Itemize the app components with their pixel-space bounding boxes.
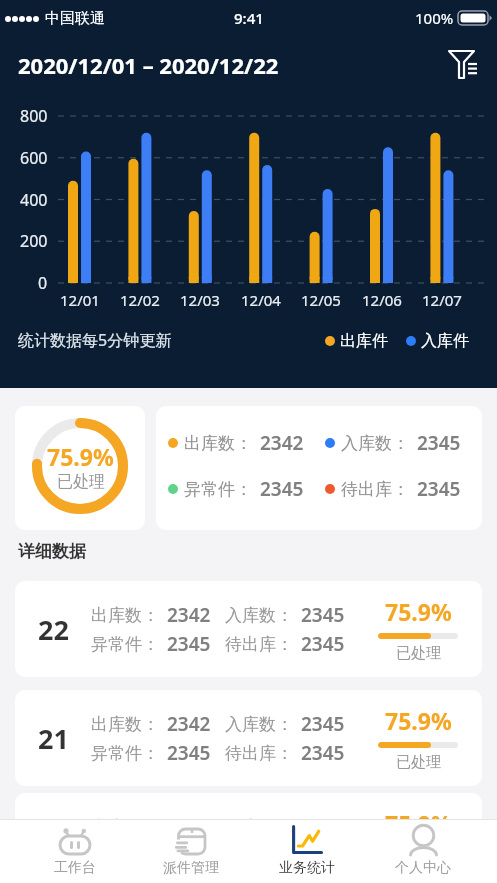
staticText: 统计数据每5分钟更新	[18, 329, 172, 351]
staticText: 2345	[167, 631, 211, 657]
button[interactable]: 业务统计	[249, 820, 365, 883]
staticText: 0	[38, 272, 48, 294]
staticText: 异常件：	[91, 634, 159, 655]
staticText: 22	[38, 611, 69, 648]
staticText: 工作台	[54, 859, 96, 877]
staticText: 100%	[415, 8, 454, 28]
staticText: 待出库：	[225, 634, 293, 655]
staticText: 派件管理	[163, 859, 219, 877]
staticText: 600	[20, 147, 48, 169]
staticText: 入库数：	[225, 817, 293, 819]
staticText: 2345	[417, 476, 461, 502]
staticText: 入库数：	[341, 433, 409, 454]
staticText: 2020/12/01 – 2020/12/22	[18, 50, 279, 80]
staticText: 详细数据	[18, 541, 86, 562]
staticText: 2345	[301, 711, 345, 737]
staticText: 2345	[167, 740, 211, 766]
staticText: 出库数：	[91, 605, 159, 626]
staticText: 2342	[167, 711, 211, 737]
staticText: 2345	[301, 740, 345, 766]
staticText: 12/05	[301, 290, 341, 310]
staticText: 2342	[167, 602, 211, 628]
button[interactable]: 75.9%	[15, 406, 145, 530]
staticText: 12/07	[422, 290, 462, 310]
staticText: 出库数：	[91, 714, 159, 735]
staticText: 异常件：	[184, 479, 252, 500]
staticText: 800	[20, 105, 48, 127]
staticText: 出库件	[340, 331, 388, 351]
staticText: 个人中心	[395, 859, 451, 877]
staticText: 75.9%	[385, 808, 452, 819]
staticText: 入库数：	[225, 605, 293, 626]
staticText: 12/03	[180, 290, 220, 310]
staticText: 21	[38, 720, 69, 757]
staticText: 业务统计	[279, 859, 335, 877]
button[interactable]: 个人中心	[365, 820, 481, 883]
staticText: 2345	[260, 476, 304, 502]
staticText: 已处理	[396, 644, 441, 663]
staticText: 待出库：	[341, 479, 409, 500]
staticText: 200	[20, 230, 48, 252]
staticText: 12/01	[60, 290, 100, 310]
button[interactable]	[440, 44, 484, 88]
button[interactable]: 22	[15, 581, 482, 677]
staticText: 12/02	[120, 290, 160, 310]
staticText: 入库件	[421, 331, 469, 351]
button[interactable]: 20	[15, 793, 482, 819]
staticText: 2345	[301, 602, 345, 628]
staticText: 75.9%	[47, 441, 114, 472]
staticText: 已处理	[57, 472, 105, 492]
button[interactable]: 出库数：	[156, 406, 482, 530]
staticText: 2345	[301, 631, 345, 657]
staticText: 入库数：	[225, 714, 293, 735]
staticText: 出库数：	[184, 433, 252, 454]
staticText: 400	[20, 189, 48, 211]
button[interactable]: 工作台	[16, 820, 133, 883]
staticText: 待出库：	[225, 743, 293, 764]
staticText: 出库数：	[91, 817, 159, 819]
staticText: 12/06	[362, 290, 402, 310]
button[interactable]: 21	[15, 690, 482, 786]
staticText: 12/04	[241, 290, 281, 310]
staticText: 9:41	[234, 8, 264, 28]
staticText: 2345	[417, 430, 461, 456]
staticText: 异常件：	[91, 743, 159, 764]
staticText: 中国联通	[45, 9, 105, 28]
staticText: 已处理	[396, 753, 441, 772]
staticText: 2342	[260, 430, 304, 456]
button[interactable]: 派件管理	[133, 820, 249, 883]
staticText: 75.9%	[385, 596, 452, 627]
staticText: 75.9%	[385, 705, 452, 736]
